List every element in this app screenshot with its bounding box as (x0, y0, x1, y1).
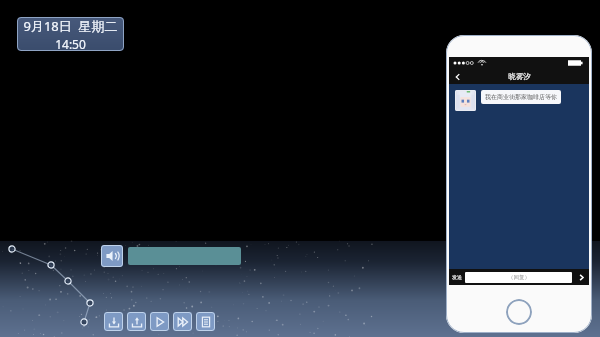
button[interactable]: 我在商业街那家咖啡店等你 (485, 93, 557, 101)
button[interactable]: 9月18日 星期二 (17, 17, 124, 51)
staticText: 晓雾汐 (508, 72, 531, 81)
button[interactable]: Avatar (455, 90, 476, 111)
button[interactable]: Send (576, 272, 586, 282)
button[interactable]: Log (196, 312, 215, 331)
button[interactable]: Volume (101, 245, 123, 267)
button[interactable]: 发送 (452, 274, 462, 280)
button[interactable]: 晓雾汐 (449, 69, 589, 84)
button[interactable]: Play (150, 312, 169, 331)
button[interactable]: Fast forward (173, 312, 192, 331)
button[interactable]: Home (506, 299, 532, 325)
button[interactable] (128, 247, 241, 265)
staticText: 14:50 (55, 36, 86, 51)
button[interactable]: Load (127, 312, 146, 331)
staticText: （回复） (508, 274, 530, 281)
button[interactable]: （回复） (465, 272, 572, 283)
button[interactable]: Save (104, 312, 123, 331)
button[interactable]: Back (452, 71, 464, 83)
staticText: 发送 (452, 274, 462, 280)
staticText: 我在商业街那家咖啡店等你 (485, 93, 557, 101)
staticText: 9月18日 星期二 (23, 17, 118, 35)
